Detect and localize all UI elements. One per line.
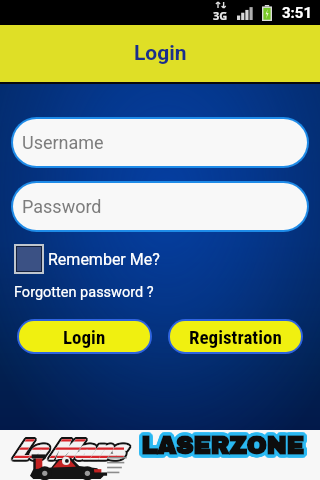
staticText: LASERZONE — [143, 434, 306, 460]
staticText: LASERZONE — [141, 431, 304, 457]
staticText: Le Mans — [12, 432, 122, 469]
staticText: LASERZONE — [138, 434, 301, 460]
staticText: Le Mans — [15, 433, 125, 470]
button[interactable]: Registration — [170, 321, 301, 352]
staticText: LASERZONE — [142, 430, 305, 456]
staticText: Le Mans — [14, 429, 124, 466]
staticText: LASERZONE — [144, 432, 307, 458]
staticText: LASERZONE — [141, 432, 304, 458]
staticText: Le Mans — [16, 431, 126, 468]
staticText: LASERZONE — [141, 434, 304, 460]
staticText: LASERZONE — [139, 435, 302, 461]
staticText: LASERZONE — [141, 433, 304, 459]
staticText: Password — [22, 196, 102, 217]
staticText: Login — [134, 41, 187, 66]
staticText: Le Mans — [12, 431, 122, 468]
staticText: Login — [63, 326, 106, 348]
staticText: LASERZONE — [141, 435, 304, 461]
staticText: Le Mans — [16, 432, 126, 469]
staticText: Le Mans — [14, 432, 124, 469]
staticText: LASERZONE — [140, 430, 303, 456]
staticText: LASERZONE — [142, 436, 305, 462]
staticText: LASERZONE — [140, 434, 303, 460]
staticText: LASERZONE — [141, 433, 304, 459]
staticText: LASERZONE — [139, 432, 302, 458]
staticText: LASERZONE — [142, 434, 305, 460]
staticText: Le Mans — [15, 430, 125, 467]
staticText: LASERZONE — [142, 432, 305, 458]
staticText: Le Mans — [16, 430, 126, 467]
staticText: Le Mans — [13, 429, 123, 466]
staticText: LASERZONE — [140, 435, 303, 461]
staticText: LASERZONE — [142, 431, 305, 457]
staticText: LASERZONE — [138, 433, 301, 459]
staticText: Le Mans — [13, 430, 123, 467]
staticText: LASERZONE — [144, 434, 307, 460]
staticText: Le Mans — [13, 431, 123, 468]
button[interactable]: Username — [13, 119, 307, 166]
staticText: Le Mans — [13, 433, 123, 470]
staticText: LASERZONE — [143, 432, 306, 458]
staticText: Le Mans — [14, 431, 124, 468]
staticText: LASERZONE — [142, 435, 305, 461]
staticText: LASERZONE — [140, 436, 303, 462]
staticText: Le Mans — [15, 431, 125, 468]
staticText: LASERZONE — [143, 435, 306, 461]
staticText: Le Mans — [15, 432, 125, 469]
staticText: LASERZONE — [142, 433, 305, 459]
staticText: LASERZONE — [140, 432, 303, 458]
staticText: Le Mans — [14, 431, 124, 468]
button[interactable]: Remember Me? — [14, 244, 160, 274]
button[interactable]: Forgotten password ? — [14, 284, 154, 301]
staticText: 3:51 — [282, 4, 313, 22]
staticText: Username — [22, 132, 104, 153]
staticText: LASERZONE — [141, 430, 304, 456]
staticText: Le Mans — [12, 430, 122, 467]
staticText: Le Mans — [13, 432, 123, 469]
staticText: Le Mans — [14, 431, 124, 468]
button[interactable]: Login — [19, 321, 150, 352]
staticText: Le Mans — [15, 429, 125, 466]
staticText: LASERZONE — [139, 433, 302, 459]
staticText: Le Mans — [14, 433, 124, 470]
staticText: Remember Me? — [48, 250, 160, 269]
staticText: LASERZONE — [139, 434, 302, 460]
staticText: LASERZONE — [143, 431, 306, 457]
staticText: Registration — [189, 326, 282, 348]
staticText: 3G — [213, 8, 228, 23]
staticText: LASERZONE — [144, 433, 307, 459]
staticText: LASERZONE — [140, 433, 303, 459]
staticText: LASERZONE — [138, 432, 301, 458]
staticText: LASERZONE — [139, 431, 302, 457]
staticText: LASERZONE — [141, 436, 304, 462]
staticText: Le Mans — [14, 430, 124, 467]
staticText: LASERZONE — [143, 433, 306, 459]
button[interactable]: Password — [13, 183, 307, 230]
staticText: LASERZONE — [140, 431, 303, 457]
